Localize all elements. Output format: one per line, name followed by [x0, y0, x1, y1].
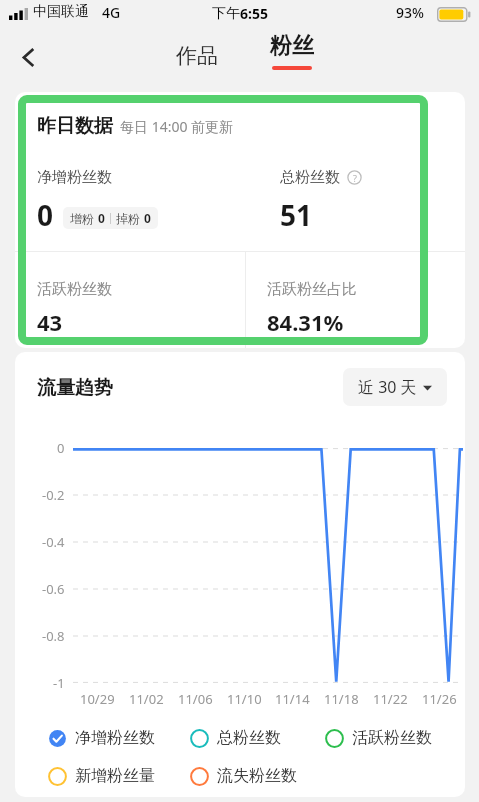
staticText: 近 30 天: [358, 376, 417, 398]
staticText: -0.2: [42, 486, 65, 504]
staticText: 0: [37, 196, 54, 234]
staticText: 84.31%: [267, 307, 344, 337]
staticText: ?: [353, 172, 357, 184]
button[interactable]: 总粉丝数: [190, 728, 281, 748]
staticText: 4G: [102, 3, 121, 22]
staticText: 93%: [396, 3, 424, 22]
staticText: 下午: [212, 5, 240, 23]
button[interactable]: 新增粉丝量: [48, 766, 155, 786]
staticText: 0: [57, 439, 65, 457]
button[interactable]: 活跃粉丝数: [325, 728, 432, 748]
staticText: 11/18: [324, 690, 359, 708]
staticText: -0.6: [42, 580, 65, 598]
staticText: 11/06: [178, 690, 213, 708]
staticText: -1: [53, 674, 65, 692]
staticText: 11/26: [422, 690, 457, 708]
staticText: 中国联通: [33, 3, 89, 21]
button[interactable]: 流失粉丝数: [190, 766, 297, 786]
staticText: 11/14: [275, 690, 310, 708]
staticText: 粉丝: [270, 32, 314, 60]
staticText: -0.4: [42, 533, 65, 551]
staticText: 净增粉丝数: [37, 168, 112, 187]
staticText: 净增粉丝数: [75, 728, 155, 748]
staticText: 流量趋势: [37, 376, 113, 400]
staticText: 11/10: [227, 690, 262, 708]
button[interactable]: 粉丝: [254, 32, 330, 84]
staticText: 11/22: [373, 690, 408, 708]
button[interactable]: Back: [3, 28, 53, 86]
staticText: 昨日数据: [37, 114, 113, 138]
button[interactable]: Help: [347, 170, 362, 185]
staticText: 总粉丝数: [217, 728, 281, 748]
staticText: 51: [280, 196, 313, 234]
staticText: 10/29: [80, 690, 115, 708]
staticText: 0: [98, 210, 105, 226]
staticText: 活跃粉丝占比: [267, 280, 357, 299]
button[interactable]: 作品: [159, 33, 235, 78]
staticText: -0.8: [42, 627, 65, 645]
staticText: 新增粉丝量: [75, 766, 155, 786]
staticText: 掉粉: [116, 211, 140, 226]
staticText: 43: [37, 307, 63, 337]
staticText: 每日 14:00 前更新: [120, 117, 234, 136]
staticText: 活跃粉丝数: [352, 728, 432, 748]
staticText: 流失粉丝数: [217, 766, 297, 786]
staticText: 11/02: [129, 690, 164, 708]
staticText: 增粉: [70, 211, 94, 226]
staticText: 活跃粉丝数: [37, 280, 112, 299]
button[interactable]: 净增粉丝数: [48, 728, 155, 748]
staticText: 总粉丝数: [280, 168, 340, 187]
staticText: 作品: [176, 43, 218, 69]
button[interactable]: 近 30 天: [343, 368, 447, 406]
staticText: 0: [144, 210, 151, 226]
staticText: 6:55: [240, 4, 268, 23]
button[interactable]: 昨日数据: [15, 92, 465, 348]
